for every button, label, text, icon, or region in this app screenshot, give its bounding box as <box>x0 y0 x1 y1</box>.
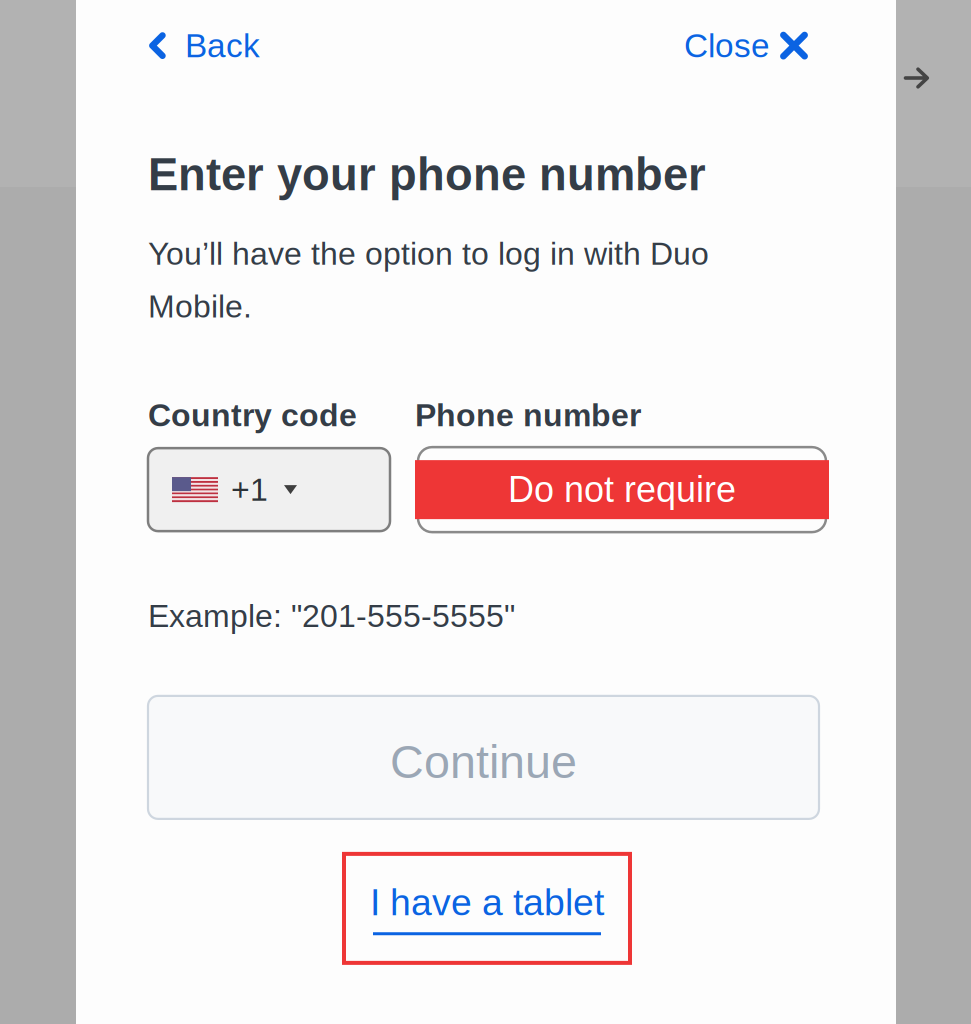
staticText: Example: "201-555-5555" <box>148 598 515 634</box>
staticText: I have a tablet <box>370 881 604 923</box>
button[interactable]: +1 <box>148 448 390 531</box>
staticText: Mobile. <box>148 289 252 324</box>
staticText: Back <box>185 27 260 64</box>
staticText: +1 <box>231 472 268 508</box>
staticText: You’ll have the option to log in with Du… <box>148 236 709 272</box>
button[interactable]: Continue <box>148 696 819 819</box>
button[interactable]: Close <box>684 21 896 70</box>
button[interactable]: I have a tablet <box>344 854 630 963</box>
staticText: Do not require <box>508 469 736 510</box>
staticText: Country code <box>148 397 357 433</box>
staticText: Continue <box>390 736 577 788</box>
button[interactable]: Back <box>76 21 260 70</box>
staticText: Enter your phone number <box>148 149 706 200</box>
staticText: Phone number <box>415 397 641 433</box>
staticText: Close <box>684 27 770 64</box>
button[interactable]: Next <box>897 61 937 95</box>
